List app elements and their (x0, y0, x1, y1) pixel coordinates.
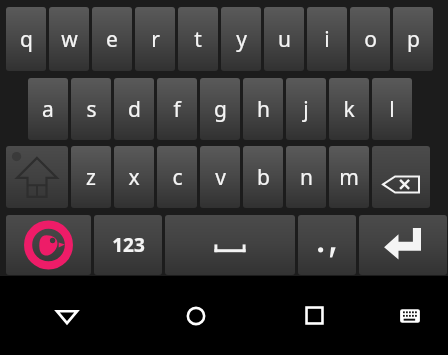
button[interactable]: w (49, 7, 89, 71)
staticText: b (257, 163, 270, 192)
button[interactable]: r (135, 7, 175, 71)
button[interactable]: 123 (94, 215, 162, 275)
button[interactable]: e (92, 7, 132, 71)
staticText: v (215, 163, 226, 192)
button[interactable]: Delete (372, 146, 430, 208)
button[interactable]: l (372, 78, 412, 140)
button[interactable]: z (71, 146, 111, 208)
staticText: s (86, 95, 97, 124)
button[interactable]: i (307, 7, 347, 71)
staticText: h (257, 95, 270, 124)
button[interactable]: Enter (359, 215, 447, 275)
staticText: y (236, 25, 247, 54)
button[interactable]: a (28, 78, 68, 140)
staticText: o (364, 25, 377, 54)
staticText: p (407, 25, 420, 54)
button[interactable]: f (157, 78, 197, 140)
button[interactable]: Space (165, 215, 295, 275)
staticText: q (20, 25, 33, 54)
staticText: u (278, 25, 291, 54)
staticText: z (86, 163, 96, 192)
button[interactable]: q (6, 7, 46, 71)
button[interactable]: u (264, 7, 304, 71)
button[interactable]: Switch keyboard (371, 276, 448, 355)
button[interactable]: Input method (6, 215, 91, 275)
staticText: e (106, 25, 118, 54)
button[interactable]: j (286, 78, 326, 140)
staticText: j (303, 95, 309, 124)
button[interactable]: n (286, 146, 326, 208)
staticText: n (300, 163, 313, 192)
button[interactable]: v (200, 146, 240, 208)
staticText: 123 (112, 232, 145, 258)
button[interactable]: d (114, 78, 154, 140)
button[interactable]: t (178, 7, 218, 71)
button[interactable]: h (243, 78, 283, 140)
staticText: k (343, 95, 355, 124)
button[interactable]: o (350, 7, 390, 71)
staticText: d (128, 95, 141, 124)
button[interactable]: Shift (6, 146, 68, 208)
staticText: c (172, 163, 183, 192)
staticText: w (61, 25, 78, 54)
button[interactable]: c (157, 146, 197, 208)
staticText: t (194, 25, 202, 54)
button[interactable]: Back (0, 276, 134, 355)
button[interactable]: g (200, 78, 240, 140)
button[interactable]: x (114, 146, 154, 208)
button[interactable]: s (71, 78, 111, 140)
staticText: g (214, 95, 227, 124)
staticText: x (128, 163, 140, 192)
button[interactable]: y (221, 7, 261, 71)
staticText: a (42, 95, 54, 124)
button[interactable]: k (329, 78, 369, 140)
staticText: r (151, 25, 160, 54)
staticText: i (324, 25, 330, 54)
button[interactable]: p (393, 7, 433, 71)
staticText: l (389, 95, 395, 124)
button[interactable]: Home (134, 276, 258, 355)
button[interactable]: m (329, 146, 369, 208)
button[interactable]: Period and comma (298, 215, 356, 275)
staticText: f (173, 95, 181, 124)
button[interactable]: b (243, 146, 283, 208)
staticText: m (339, 163, 359, 192)
button[interactable]: Recent apps (258, 276, 371, 355)
